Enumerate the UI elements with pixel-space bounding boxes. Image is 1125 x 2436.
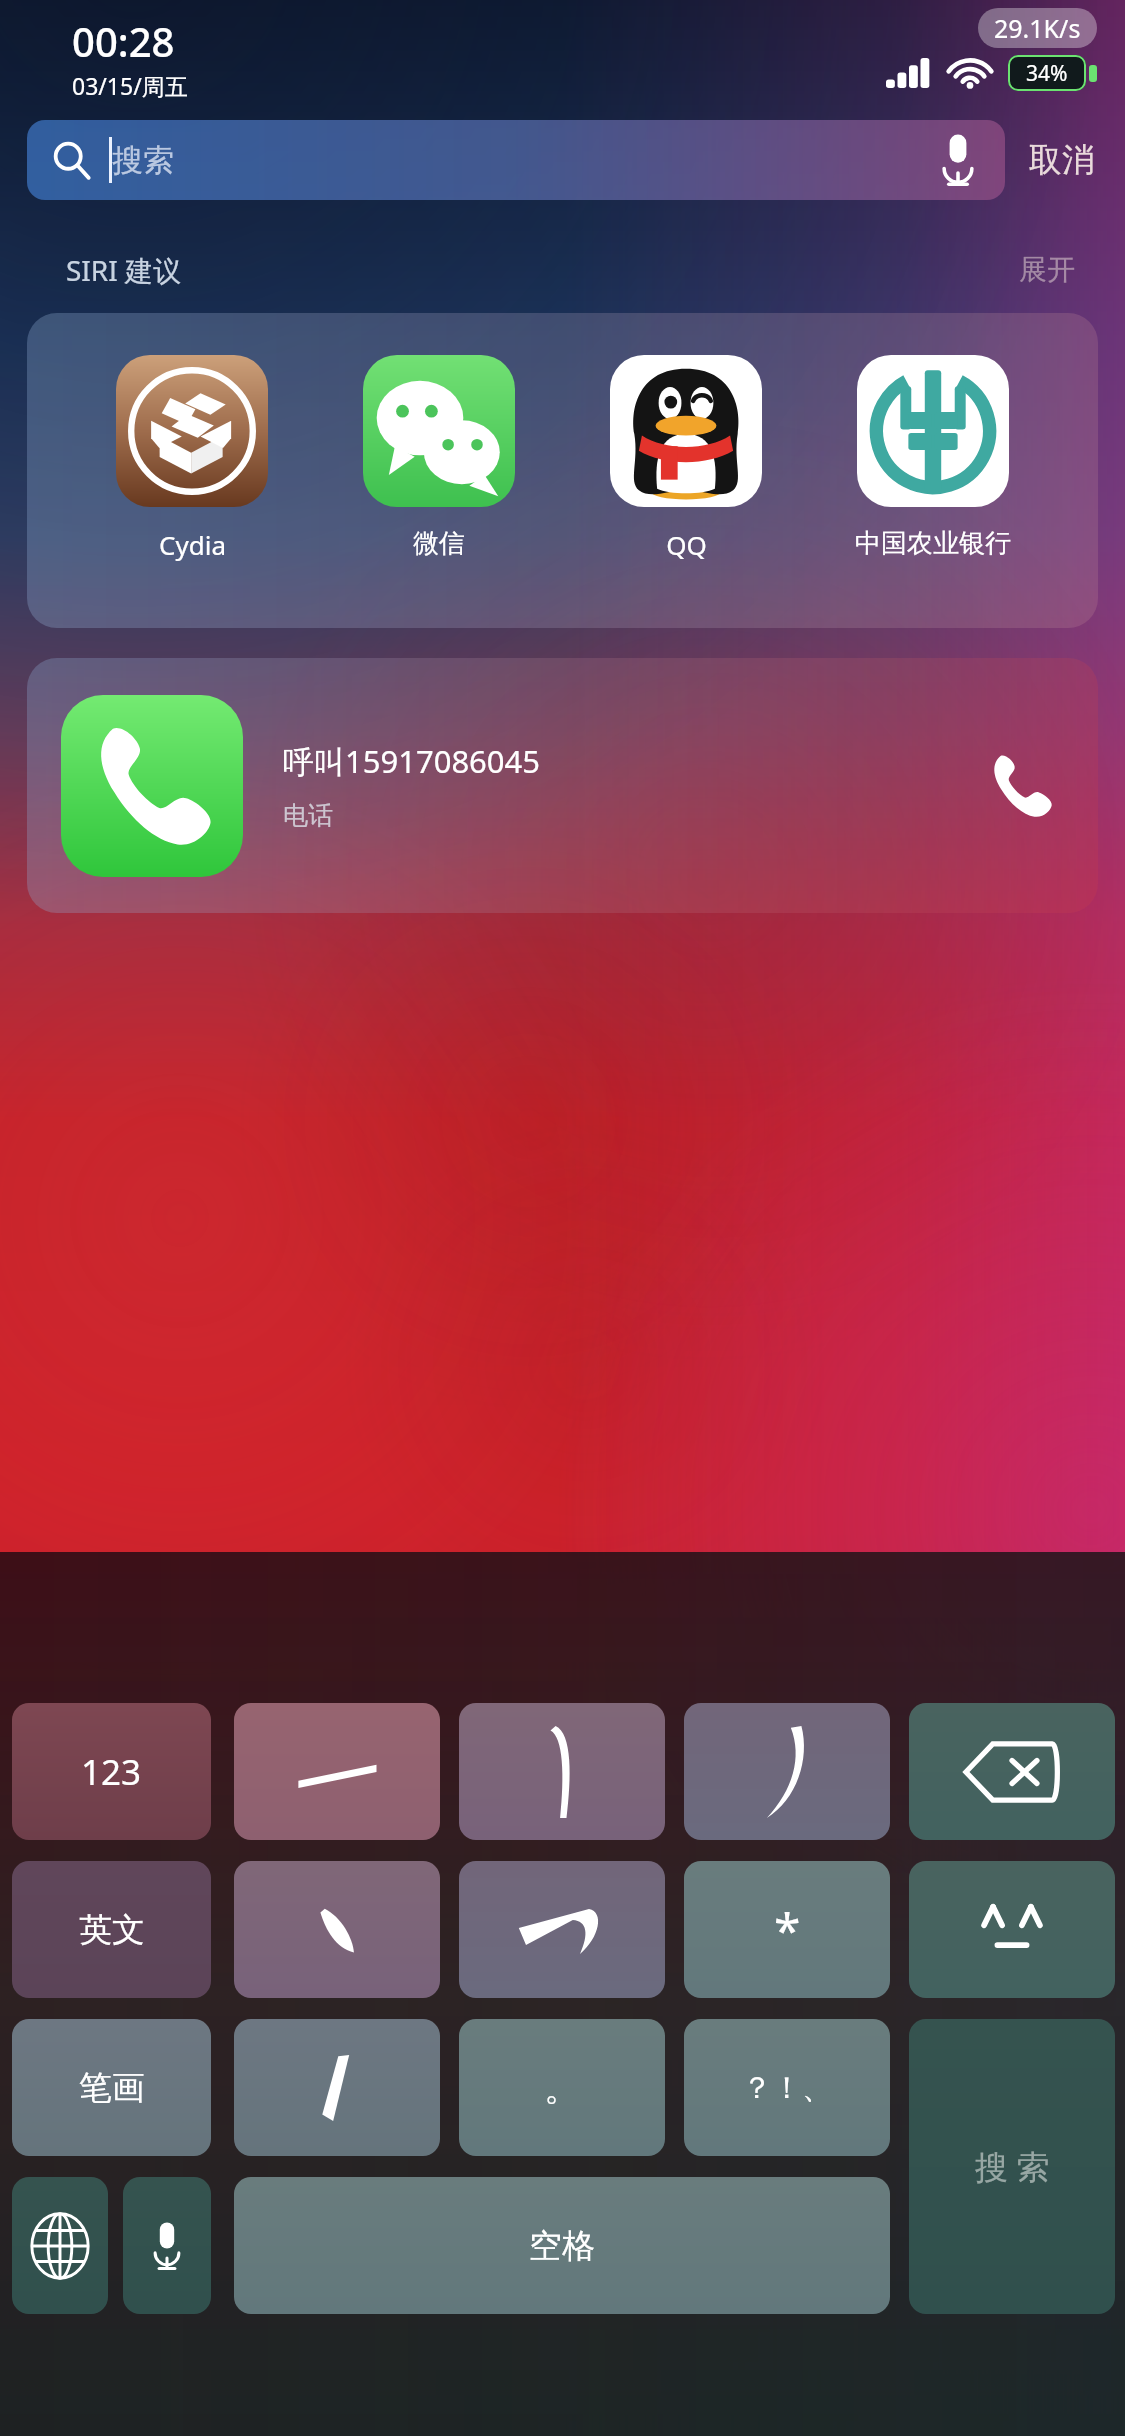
button[interactable]: Backspace xyxy=(909,1703,1115,1840)
button[interactable]: 。 xyxy=(459,2019,665,2156)
button[interactable]: Stroke pie xyxy=(684,1703,890,1840)
button[interactable]: 展开 xyxy=(1013,246,1081,293)
button[interactable]: Call xyxy=(978,743,1064,829)
button[interactable]: 微信 xyxy=(339,355,539,560)
button[interactable]: 取消 xyxy=(1021,129,1103,191)
staticText: 34% xyxy=(1026,59,1068,88)
staticText: 英文 xyxy=(79,1909,145,1951)
button[interactable]: 英文 xyxy=(12,1861,211,1998)
button[interactable]: * xyxy=(684,1861,890,1998)
staticText: 笔画 xyxy=(79,2067,145,2109)
staticText: 空格 xyxy=(529,2225,595,2267)
staticText: 29.1K/s xyxy=(994,11,1081,45)
button[interactable]: Cydia xyxy=(92,355,292,562)
staticText: 微信 xyxy=(413,527,465,560)
staticText: ？！、 xyxy=(742,2069,832,2107)
button[interactable]: 中国农业银行 xyxy=(833,355,1033,560)
staticText: 03/15/周五 xyxy=(72,70,188,101)
button[interactable]: 笔画 xyxy=(12,2019,211,2156)
staticText: Cydia xyxy=(159,527,226,562)
staticText: SIRI 建议 xyxy=(66,251,182,289)
button[interactable]: QQ xyxy=(586,355,786,562)
staticText: 00:28 xyxy=(72,14,175,68)
staticText: * xyxy=(774,1897,801,1962)
staticText: 呼叫15917086045 xyxy=(283,740,541,782)
staticText: 电话 xyxy=(283,800,333,831)
button[interactable]: 搜 索 xyxy=(909,2019,1115,2314)
staticText: 展开 xyxy=(1019,252,1075,287)
button[interactable]: Switch keyboard xyxy=(12,2177,108,2314)
button[interactable]: Emoji xyxy=(909,1861,1115,1998)
staticText: QQ xyxy=(666,527,707,562)
button[interactable]: 呼叫15917086045 xyxy=(27,658,1098,913)
button[interactable]: 123 xyxy=(12,1703,211,1840)
staticText: 。 xyxy=(544,2065,580,2110)
button[interactable]: Stroke dian xyxy=(234,1861,440,1998)
button[interactable]: Stroke heng xyxy=(234,1703,440,1840)
staticText: 搜索 xyxy=(112,141,174,180)
button[interactable]: ？！、 xyxy=(684,2019,890,2156)
button[interactable]: Cydia xyxy=(27,313,1098,628)
button[interactable]: 搜索 xyxy=(27,120,1005,200)
button[interactable]: Voice input xyxy=(123,2177,211,2314)
staticText: 搜 索 xyxy=(975,2144,1050,2189)
button[interactable]: Voice search xyxy=(929,131,987,189)
button[interactable]: Stroke shu xyxy=(459,1703,665,1840)
button[interactable]: Stroke na xyxy=(234,2019,440,2156)
button[interactable]: Stroke zhe xyxy=(459,1861,665,1998)
staticText: 123 xyxy=(81,1748,142,1796)
button[interactable]: 空格 xyxy=(234,2177,890,2314)
staticText: 取消 xyxy=(1029,139,1095,181)
staticText: 中国农业银行 xyxy=(855,527,1011,560)
